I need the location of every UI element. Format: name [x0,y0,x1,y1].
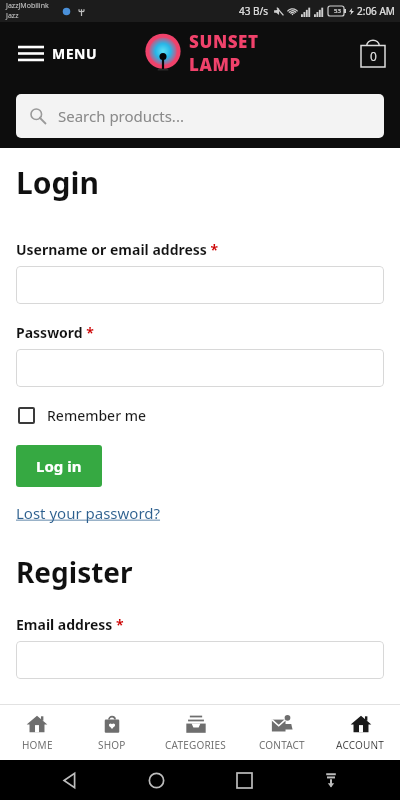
staticText: Password * [16,323,94,342]
staticText: Remember me [47,406,147,425]
button[interactable]: Lost your password? [16,503,161,523]
button[interactable]: Hide keyboard [313,762,349,798]
button[interactable]: Remember me [16,404,149,427]
staticText: Username or email address * [16,240,219,259]
button[interactable]: Home [138,762,174,798]
staticText: SHOP [98,738,126,752]
staticText: ACCOUNT [336,738,385,752]
button[interactable]: Log in [16,445,102,487]
staticText: 53 [334,7,341,15]
button[interactable]: ACCOUNT [321,705,400,760]
staticText: 43 B/s [239,4,269,18]
button[interactable]: Back [51,762,87,798]
button[interactable]: CONTACT [242,705,321,760]
staticText: Login [16,162,99,203]
button[interactable]: CATEGORIES [149,705,242,760]
staticText: Search products... [58,106,184,126]
button[interactable]: HOME [0,705,74,760]
button[interactable]: Search products... [16,94,384,138]
staticText: Log in [36,456,82,476]
button[interactable] [16,349,384,387]
staticText: LAMP [189,53,241,76]
button[interactable]: Cart, 0 items [360,38,386,68]
button[interactable]: MENU [14,40,102,67]
button[interactable] [16,266,384,304]
staticText: CONTACT [259,738,305,752]
staticText: 2:06 AM [357,4,395,18]
button[interactable]: SUNSET [141,30,259,76]
staticText: 0 [370,48,377,64]
staticText: JazzJMobilink [6,1,49,11]
staticText: Jazz [6,11,19,21]
button[interactable] [16,641,384,679]
staticText: SUNSET [189,30,259,53]
button[interactable]: Recent apps [226,762,262,798]
button[interactable]: SHOP [74,705,149,760]
staticText: CATEGORIES [165,738,226,752]
staticText: Lost your password? [16,503,161,523]
staticText: HOME [22,738,53,752]
staticText: MENU [52,44,98,63]
staticText: Email address * [16,615,124,634]
staticText: Register [16,553,133,591]
